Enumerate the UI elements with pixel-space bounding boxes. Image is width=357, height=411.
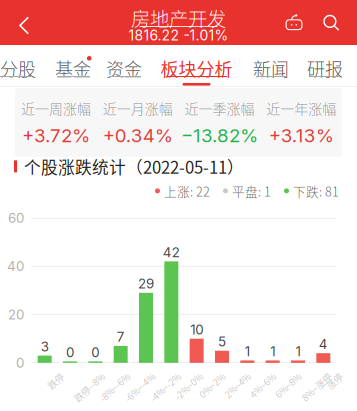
staticText: 7 <box>117 329 125 345</box>
button[interactable]: 成分股 <box>0 45 32 86</box>
staticText: 4 <box>319 336 328 352</box>
staticText: 房地产开发 <box>131 4 226 32</box>
staticText: 资金 <box>106 55 142 82</box>
staticText: 2%~4% <box>213 370 244 383</box>
staticText: 3 <box>41 338 49 355</box>
staticText: -4%~-2% <box>137 370 174 383</box>
staticText: 近一月涨幅 <box>103 98 173 118</box>
staticText: 近一季涨幅 <box>184 98 254 118</box>
staticText: 1 <box>295 343 300 359</box>
staticText: 4%~6% <box>239 370 270 383</box>
staticText: 0 <box>16 355 24 371</box>
staticText: -8%~-6% <box>87 370 124 383</box>
staticText: 板块分析 <box>160 55 232 82</box>
staticText: 60 <box>8 210 24 226</box>
staticText: 涨停 <box>318 370 336 383</box>
staticText: +0.34% <box>103 124 173 147</box>
staticText: 近一周涨幅 <box>21 98 91 118</box>
staticText: 0 <box>66 344 74 360</box>
staticText: −13.82% <box>181 124 258 147</box>
staticText: 5 <box>218 334 226 350</box>
staticText: 20 <box>8 306 24 323</box>
staticText: 个股涨跌统计（2022-05-11） <box>24 154 244 178</box>
staticText: +3.72% <box>22 124 90 147</box>
staticText: 平盘: 1 <box>232 182 271 200</box>
staticText: 0%~2% <box>188 370 219 383</box>
staticText: 新闻 <box>253 55 289 82</box>
staticText: -2%~0% <box>163 370 197 383</box>
staticText: 下跌: 81 <box>293 182 339 200</box>
staticText: 10 <box>190 322 203 338</box>
staticText: 1 <box>270 343 275 359</box>
staticText: 0 <box>91 344 99 360</box>
staticText: +3.13% <box>269 124 334 147</box>
staticText: 成分股 <box>0 55 36 82</box>
button[interactable]: 资金 <box>109 45 139 86</box>
staticText: 跌停 <box>40 370 58 383</box>
staticText: 上涨: 22 <box>164 182 210 200</box>
staticText: 1 <box>245 343 250 359</box>
staticText: 6%~8% <box>264 370 295 383</box>
button[interactable]: 基金 <box>58 45 88 86</box>
button[interactable]: 新闻 <box>256 45 286 86</box>
button[interactable]: 研报 <box>310 45 340 86</box>
staticText: 42 <box>163 244 180 260</box>
staticText: 40 <box>7 258 24 274</box>
button[interactable]: Back <box>9 0 39 45</box>
staticText: -6%~-4% <box>112 370 149 383</box>
staticText: 基金 <box>55 55 91 82</box>
button[interactable]: AI assistant <box>275 0 313 45</box>
staticText: 29 <box>138 276 154 292</box>
button[interactable]: Search <box>313 0 349 45</box>
button[interactable]: 板块分析 <box>166 45 227 86</box>
staticText: 1816.22 -1.01% <box>128 27 228 44</box>
staticText: 近一年涨幅 <box>266 98 336 118</box>
staticText: 研报 <box>307 55 343 82</box>
staticText: 跌停--8% <box>61 370 98 383</box>
staticText: 8%~涨停 <box>289 370 325 383</box>
